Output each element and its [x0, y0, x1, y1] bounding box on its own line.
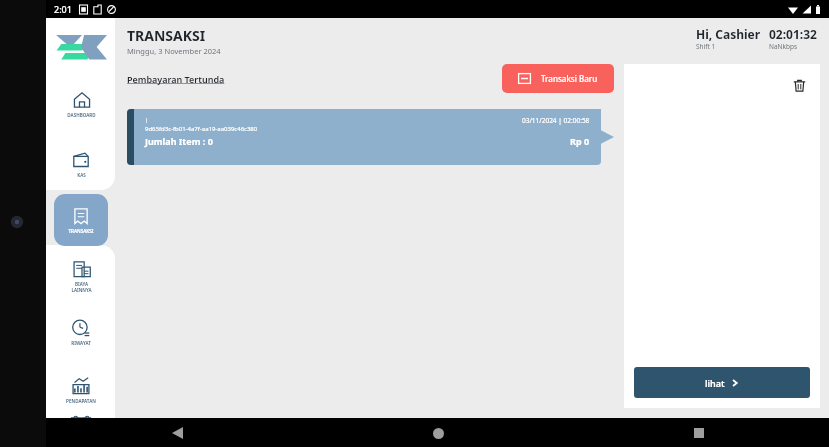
- button[interactable]: |: [127, 109, 614, 165]
- staticText: 9d65fd3c-fb01-4a7f-aa19-aa039c46c380: [145, 125, 258, 133]
- staticText: DASHBOARD: [67, 112, 96, 118]
- staticText: NaNkbps: [769, 42, 798, 51]
- staticText: KAS: [77, 172, 86, 178]
- staticText: 02:01:32: [769, 26, 817, 42]
- button[interactable]: KAS: [56, 144, 106, 184]
- button[interactable]: TRANSAKSI: [54, 194, 108, 246]
- staticText: 03/11/2024 | 02:00:58: [522, 116, 590, 125]
- button[interactable]: DASHBOARD: [56, 84, 106, 124]
- staticText: Shift 1: [696, 42, 716, 51]
- staticText: 2:01: [54, 3, 72, 15]
- staticText: PENDAPATAN: [66, 398, 96, 404]
- staticText: |: [145, 116, 149, 124]
- button[interactable]: Transaksi Baru: [502, 64, 614, 93]
- staticText: Jumlah Item : 0: [145, 135, 213, 147]
- button[interactable]: RIWAYAT: [56, 312, 106, 352]
- button[interactable]: Home: [426, 421, 450, 445]
- button[interactable]: Pembayaran Tertunda: [127, 73, 225, 85]
- button[interactable]: Recent apps: [687, 421, 711, 445]
- staticText: TRANSAKSI: [68, 228, 94, 234]
- button[interactable]: Hapus: [788, 74, 810, 96]
- staticText: Minggu, 3 November 2024: [127, 46, 221, 56]
- button[interactable]: PENDAPATAN: [56, 370, 106, 410]
- staticText: Hi, Cashier: [696, 26, 761, 42]
- staticText: RIWAYAT: [71, 340, 91, 346]
- staticText: Transaksi Baru: [541, 73, 598, 84]
- button[interactable]: Back: [165, 421, 189, 445]
- button[interactable]: BIAYA LAINNYA: [56, 256, 106, 296]
- staticText: lihat: [705, 377, 725, 389]
- button[interactable]: lihat: [634, 367, 810, 398]
- staticText: BIAYA LAINNYA: [71, 281, 92, 293]
- staticText: TRANSAKSI: [127, 26, 206, 45]
- staticText: Rp 0: [570, 135, 590, 147]
